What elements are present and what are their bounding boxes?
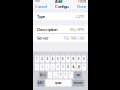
staticText: Done	[77, 4, 86, 9]
staticText: 192.168.1.68	[63, 35, 84, 41]
button[interactable]: $	[66, 63, 70, 70]
button[interactable]: ,	[53, 71, 57, 78]
staticText: L2TP	[76, 14, 84, 19]
staticText: 8	[72, 57, 74, 61]
staticText: -	[37, 65, 38, 69]
staticText: 100%	[78, 0, 86, 3]
staticText: ,	[55, 73, 56, 77]
staticText: Add Configuration	[55, 0, 69, 14]
staticText: 2	[41, 57, 43, 61]
button[interactable]: 0	[82, 55, 86, 62]
button[interactable]: 1	[35, 55, 39, 62]
staticText: 9	[78, 57, 80, 61]
button[interactable]: space	[45, 79, 71, 86]
staticText: 0	[83, 57, 85, 61]
staticText: ⌫	[76, 73, 80, 76]
button[interactable]: Server	[33, 34, 88, 42]
button[interactable]: "	[82, 63, 86, 70]
button[interactable]: ?	[58, 71, 63, 78]
staticText: 5	[57, 57, 59, 61]
staticText: 1	[36, 57, 38, 61]
button[interactable]: )	[61, 63, 65, 70]
staticText: space	[55, 81, 62, 85]
staticText: 7	[67, 57, 69, 61]
button[interactable]: (	[56, 63, 60, 70]
button[interactable]: '	[69, 71, 73, 78]
button[interactable]: 5	[56, 55, 60, 62]
staticText: 9:41	[55, 0, 62, 3]
staticText: #+=	[40, 73, 46, 77]
button[interactable]: Done	[77, 4, 86, 9]
staticText: .	[50, 73, 51, 77]
staticText: 6	[62, 57, 64, 61]
staticText: !	[65, 73, 66, 77]
staticText: Type	[37, 14, 45, 19]
button[interactable]: Description	[33, 25, 88, 33]
button[interactable]: 8	[71, 55, 76, 62]
button[interactable]: 7	[66, 55, 70, 62]
button[interactable]: ;	[50, 63, 55, 70]
button[interactable]: Type	[33, 12, 88, 20]
staticText: @	[78, 65, 80, 69]
staticText: Cancel	[35, 4, 47, 9]
staticText: "	[83, 65, 84, 69]
button[interactable]: &	[71, 63, 76, 70]
staticText: •••••	[35, 0, 40, 3]
button[interactable]: return	[72, 79, 84, 86]
button[interactable]: ABC	[37, 79, 45, 86]
button[interactable]: #+=	[39, 71, 47, 78]
staticText: (	[57, 65, 58, 69]
staticText: 4	[52, 57, 54, 61]
staticText: Description	[37, 27, 57, 32]
button[interactable]: /	[40, 63, 44, 70]
staticText: :	[47, 65, 48, 69]
button[interactable]: Cancel	[35, 4, 47, 9]
staticText: &	[72, 65, 74, 69]
button[interactable]: @	[76, 63, 81, 70]
staticText: ?	[60, 73, 61, 77]
staticText: /	[42, 65, 43, 69]
button[interactable]: 9	[76, 55, 81, 62]
staticText: Server	[37, 35, 49, 41]
button[interactable]: 3	[45, 55, 50, 62]
staticText: 3	[46, 57, 48, 61]
staticText: My VPN	[70, 27, 84, 32]
button[interactable]: 4	[50, 55, 55, 62]
button[interactable]: Delete	[74, 71, 82, 78]
button[interactable]: !	[63, 71, 68, 78]
staticText: ;	[52, 65, 53, 69]
button[interactable]: 2	[40, 55, 44, 62]
staticText: )	[63, 65, 64, 69]
button[interactable]: .	[48, 71, 52, 78]
staticText: $	[67, 65, 69, 69]
button[interactable]: 6	[61, 55, 65, 62]
button[interactable]: :	[45, 63, 50, 70]
staticText: ABC	[38, 81, 44, 85]
button[interactable]: -	[35, 63, 39, 70]
staticText: '	[70, 73, 71, 77]
staticText: return	[74, 81, 83, 85]
